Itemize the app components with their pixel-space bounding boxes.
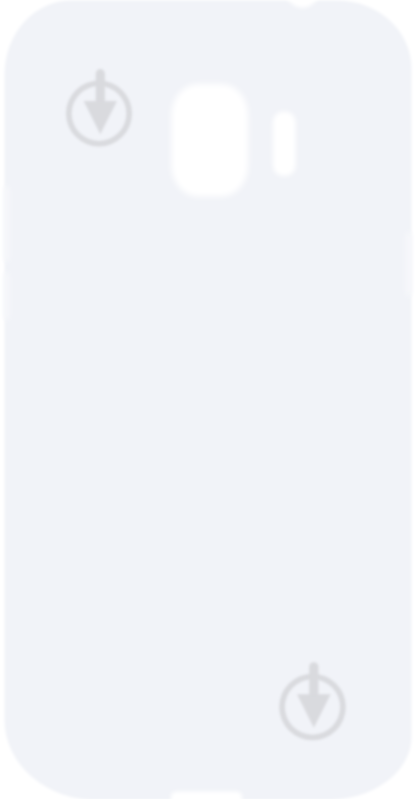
button[interactable]: Phone case product photo — [0, 0, 417, 799]
